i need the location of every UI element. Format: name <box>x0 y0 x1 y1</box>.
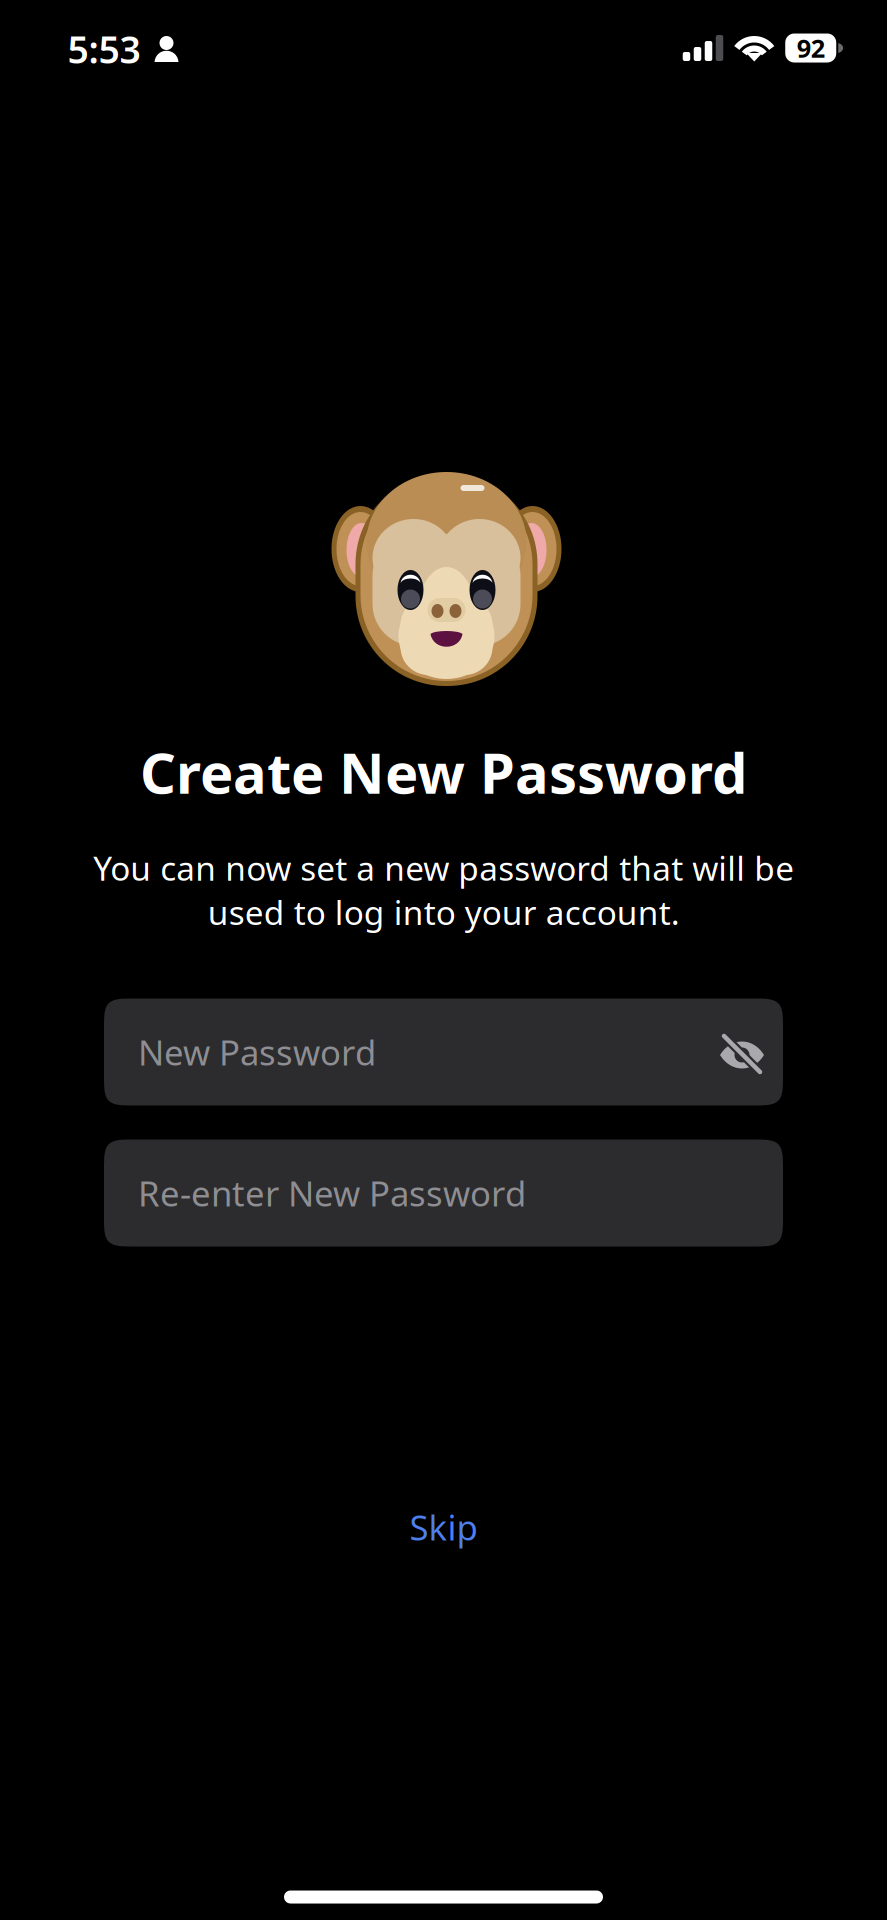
staticText: 92 <box>797 31 825 65</box>
staticText: 5:53 <box>67 24 140 74</box>
staticText: Re-enter New Password <box>138 1170 526 1216</box>
button[interactable]: New Password <box>104 998 783 1105</box>
button[interactable]: Re-enter New Password <box>104 1139 783 1246</box>
button[interactable]: Skip <box>353 1492 533 1562</box>
staticText: Skip <box>409 1504 477 1550</box>
staticText: You can now set a new password that will… <box>93 846 794 934</box>
staticText: New Password <box>138 1029 376 1075</box>
staticText: Create New Password <box>140 735 747 809</box>
